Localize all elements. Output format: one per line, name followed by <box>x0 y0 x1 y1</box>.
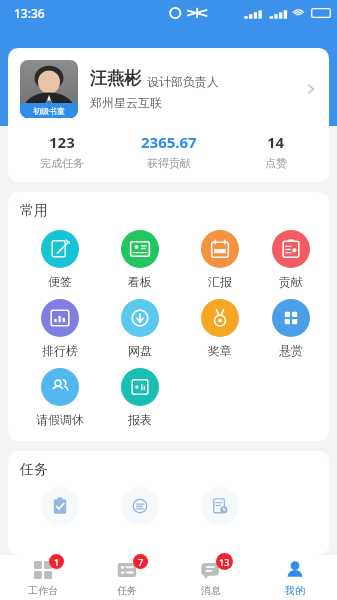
button[interactable]: 网盘 <box>100 297 180 360</box>
button[interactable]: 便签 <box>20 228 100 291</box>
staticText: 便签 <box>48 274 72 289</box>
button[interactable]: 看板 <box>100 228 180 291</box>
staticText: 郑州星云互联 <box>90 95 162 110</box>
button[interactable]: 任务入口 2 <box>100 487 180 525</box>
button[interactable]: 我的 <box>253 555 337 600</box>
staticText: 奖章 <box>208 343 232 358</box>
staticText: 常用 <box>20 202 48 220</box>
staticText: 2365.67 <box>141 132 197 152</box>
button[interactable]: 任务入口 1 <box>20 487 100 525</box>
staticText: 设计部负责人 <box>147 74 219 89</box>
staticText: 消息 <box>201 584 221 597</box>
staticText: 获得贡献 <box>147 156 191 170</box>
button[interactable]: 2365.67 <box>115 132 222 170</box>
button[interactable]: 任务入口 3 <box>180 487 260 525</box>
button[interactable]: 请假调休 <box>20 366 100 429</box>
button[interactable]: 13 <box>169 555 253 600</box>
button[interactable]: 奖章 <box>180 297 260 360</box>
button[interactable]: 悬赏 <box>260 297 321 360</box>
button[interactable]: 汇报 <box>180 228 260 291</box>
button[interactable]: 查看个人资料 <box>303 81 319 97</box>
staticText: 工作台 <box>28 584 58 597</box>
staticText: 汪燕彬 <box>90 68 141 89</box>
staticText: 我的 <box>285 584 305 597</box>
staticText: 报表 <box>128 412 152 427</box>
staticText: 任务 <box>117 584 137 597</box>
staticText: 悬赏 <box>279 343 303 358</box>
button[interactable]: 14 <box>222 132 329 170</box>
staticText: 13 <box>219 556 230 568</box>
staticText: 123 <box>49 132 75 152</box>
staticText: 排行榜 <box>42 343 78 358</box>
staticText: 14 <box>267 132 285 152</box>
button[interactable]: 排行榜 <box>20 297 100 360</box>
staticText: 7 <box>138 556 144 568</box>
button[interactable]: 1 <box>0 555 85 600</box>
staticText: 汇报 <box>208 274 232 289</box>
staticText: 看板 <box>128 274 152 289</box>
button[interactable]: 报表 <box>100 366 180 429</box>
staticText: 贡献 <box>279 274 303 289</box>
staticText: 初级书童 <box>33 106 65 116</box>
staticText: 完成任务 <box>40 156 84 170</box>
button[interactable]: 初级书童 <box>8 48 329 182</box>
staticText: 任务 <box>20 461 48 479</box>
button[interactable]: 贡献 <box>260 228 321 291</box>
button[interactable]: 123 <box>8 132 115 170</box>
button[interactable]: 7 <box>85 555 169 600</box>
staticText: 13:36 <box>14 5 45 21</box>
staticText: 点赞 <box>265 156 287 170</box>
staticText: 请假调休 <box>36 412 84 427</box>
staticText: 1 <box>54 556 60 568</box>
staticText: 网盘 <box>128 343 152 358</box>
